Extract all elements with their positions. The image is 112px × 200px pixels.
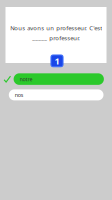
staticText: nos — [15, 91, 24, 99]
button[interactable]: nos — [9, 89, 103, 100]
staticText: notre — [20, 75, 33, 83]
staticText: 1 — [54, 54, 59, 67]
staticText: Nous avons un professeur. C'est _____ pr… — [10, 24, 102, 42]
button[interactable]: notre — [14, 73, 104, 85]
